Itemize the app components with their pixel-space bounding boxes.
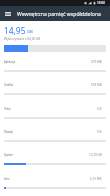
button[interactable]: Filmy (0, 105, 110, 128)
staticText: System (4, 153, 14, 157)
button[interactable]: System (0, 151, 110, 174)
staticText: 578 MB (91, 83, 102, 87)
staticText: 13,29 GB (89, 153, 102, 157)
staticText: 14,95 (4, 25, 26, 36)
staticText: GB (27, 29, 33, 35)
staticText: Grafika (4, 83, 14, 87)
staticText: Wykorzystane z 64,00 GB (4, 37, 41, 41)
staticText: Wewnętrzna pamięć współdzielona (17, 11, 101, 18)
button[interactable]: Aplikacje (0, 58, 110, 81)
staticText: 0 B (97, 107, 102, 111)
staticText: Filmy (4, 107, 11, 111)
staticText: 479 MB (91, 60, 102, 64)
staticText: 6,15 MB (90, 177, 102, 181)
button[interactable]: Inne (0, 175, 110, 196)
staticText: Dźwięk (4, 130, 13, 134)
staticText: 18:50 (97, 1, 106, 5)
staticText: Aplikacje (4, 60, 16, 64)
button[interactable]: Dźwięk (0, 128, 110, 151)
staticText: 0 B (97, 130, 102, 134)
staticText: Inne (4, 177, 10, 181)
button[interactable]: Grafika (0, 81, 110, 104)
button[interactable]: Menu (0, 6, 16, 21)
